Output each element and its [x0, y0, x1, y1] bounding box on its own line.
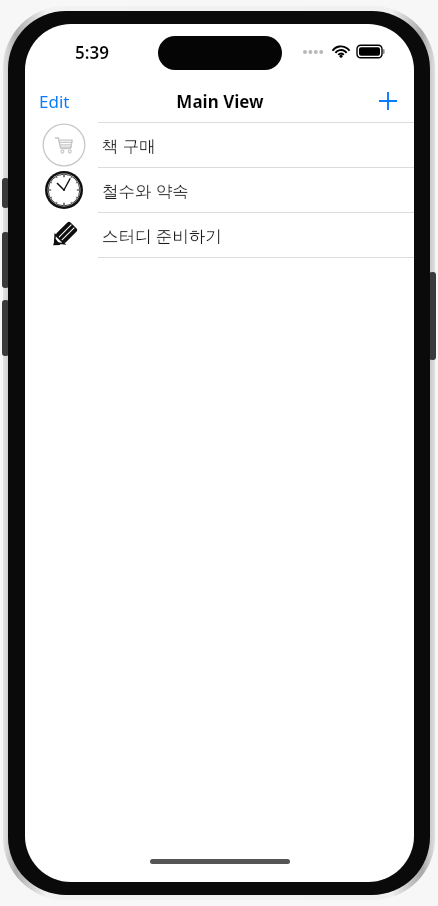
button[interactable]: 책 구매: [25, 123, 414, 167]
staticText: 책 구매: [102, 134, 156, 157]
button[interactable]: 철수와 약속: [25, 168, 414, 212]
button[interactable]: Edit: [25, 84, 84, 119]
staticText: 스터디 준비하기: [102, 224, 222, 247]
button[interactable]: 스터디 준비하기: [25, 213, 414, 257]
staticText: 5:39: [75, 41, 109, 64]
staticText: Edit: [39, 90, 70, 113]
staticText: 철수와 약속: [102, 179, 189, 202]
button[interactable]: Add: [362, 85, 414, 117]
staticText: Main View: [176, 90, 264, 113]
